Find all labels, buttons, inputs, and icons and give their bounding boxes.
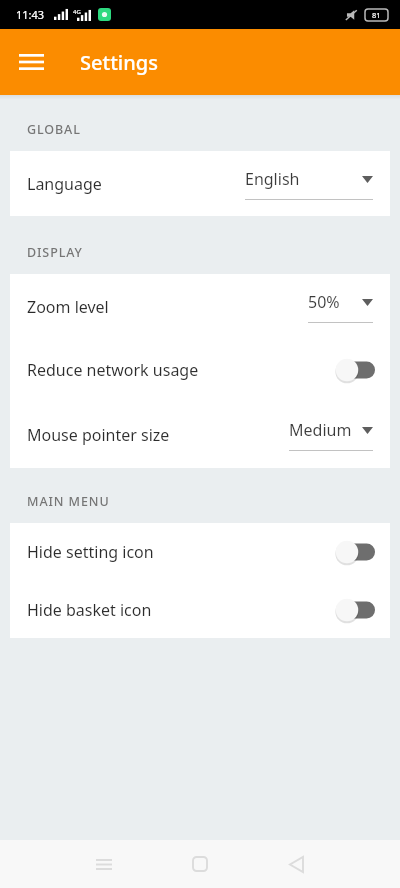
staticText: Medium: [289, 419, 352, 441]
button[interactable]: Open navigation menu: [12, 43, 50, 81]
button[interactable]: Back: [274, 842, 318, 886]
staticText: 81: [372, 10, 381, 20]
staticText: English: [245, 168, 300, 190]
button[interactable]: Hide setting icon: [10, 523, 390, 581]
button[interactable]: Hide basket icon: [10, 581, 390, 638]
button[interactable]: Recent apps: [82, 842, 126, 886]
button[interactable]: Reduce network usage: [10, 339, 390, 401]
staticText: 4G: [73, 8, 81, 16]
staticText: Settings: [80, 49, 158, 76]
button[interactable]: Zoom level: [10, 274, 390, 339]
staticText: 11:43: [16, 7, 45, 22]
staticText: Hide setting icon: [27, 541, 154, 563]
staticText: Mouse pointer size: [27, 424, 170, 446]
staticText: Hide basket icon: [27, 599, 152, 621]
button[interactable]: Language: [10, 151, 390, 216]
staticText: MAIN MENU: [27, 493, 110, 510]
staticText: Zoom level: [27, 296, 109, 318]
staticText: 50%: [308, 291, 340, 313]
staticText: Language: [27, 173, 102, 195]
button[interactable]: Home: [178, 842, 222, 886]
button[interactable]: Mouse pointer size: [10, 401, 390, 468]
staticText: DISPLAY: [27, 244, 83, 261]
staticText: GLOBAL: [27, 121, 81, 138]
staticText: Reduce network usage: [27, 359, 199, 381]
